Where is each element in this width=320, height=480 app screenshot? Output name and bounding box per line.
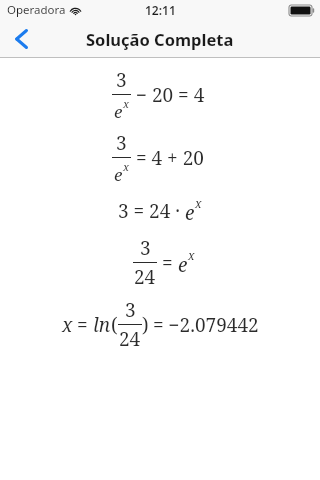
staticText: − 20 = 4 — [136, 82, 205, 108]
staticText: 3 — [116, 67, 127, 93]
staticText: Operadora — [7, 2, 66, 18]
staticText: ( — [111, 312, 118, 338]
staticText: x — [123, 96, 130, 111]
staticText: 24 — [134, 264, 156, 290]
staticText: = 4 + 20 — [136, 145, 204, 171]
staticText: = — [77, 312, 93, 338]
staticText: 3 — [140, 235, 151, 261]
staticText: = −2.079442 — [153, 312, 259, 338]
staticText: = — [162, 250, 178, 276]
staticText: 3 — [125, 297, 136, 323]
staticText: e — [178, 252, 188, 278]
staticText: 24 — [119, 326, 141, 352]
staticText: ln — [93, 312, 111, 338]
staticText: ) — [142, 312, 149, 338]
staticText: 12:11 — [145, 2, 176, 18]
staticText: x — [188, 247, 195, 263]
staticText: Solução Completa — [86, 28, 234, 50]
staticText: 3 — [116, 130, 127, 156]
staticText: x — [62, 312, 73, 338]
staticText: x — [123, 159, 130, 174]
staticText: e — [114, 163, 123, 186]
staticText: 3 = 24 · — [118, 198, 185, 224]
staticText: e — [185, 200, 195, 226]
staticText: x — [195, 195, 202, 211]
button[interactable]: Back — [0, 20, 44, 58]
staticText: e — [114, 100, 123, 123]
